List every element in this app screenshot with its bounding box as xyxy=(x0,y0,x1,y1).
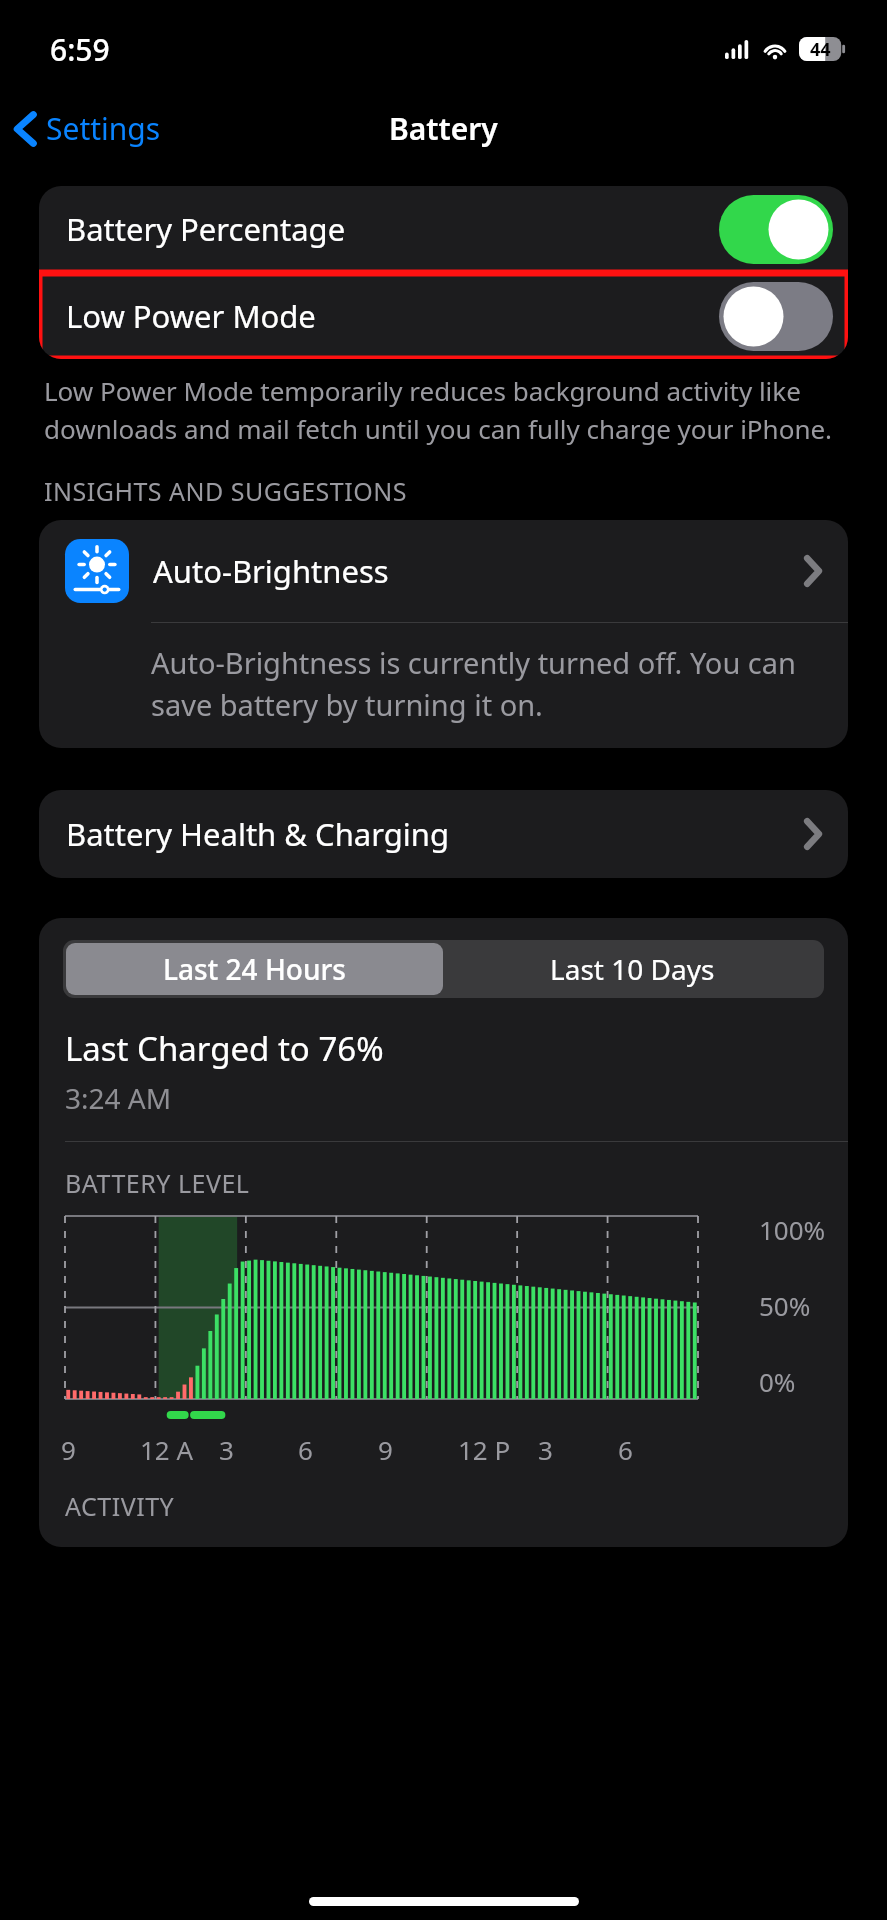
staticText: Settings xyxy=(46,108,161,149)
staticText: 12 P xyxy=(458,1432,511,1467)
staticText: Battery xyxy=(389,108,498,149)
staticText: 6:59 xyxy=(50,29,110,70)
staticText: Last 24 Hours xyxy=(163,950,346,988)
button[interactable]: Settings xyxy=(0,100,177,157)
staticText: 0% xyxy=(759,1364,796,1399)
staticText: 6 xyxy=(618,1432,633,1467)
staticText: BATTERY LEVEL xyxy=(65,1166,250,1200)
button[interactable]: Last 10 Days xyxy=(443,943,821,995)
button[interactable]: Battery Health & Charging xyxy=(39,790,848,878)
staticText: 6 xyxy=(298,1432,313,1467)
staticText: Last Charged to 76% xyxy=(65,1026,384,1071)
staticText: Auto-Brightness is currently turned off.… xyxy=(151,643,828,724)
staticText: 44 xyxy=(810,37,831,61)
staticText: Low Power Mode xyxy=(66,295,717,337)
button[interactable]: Low Power Mode xyxy=(39,273,848,359)
button[interactable]: Battery Percentage xyxy=(39,186,848,272)
staticText: 9 xyxy=(378,1432,393,1467)
staticText: 3 xyxy=(219,1432,234,1467)
staticText: 100% xyxy=(759,1212,826,1247)
staticText: 50% xyxy=(759,1288,811,1323)
staticText: 3:24 AM xyxy=(65,1079,172,1117)
staticText: Last 10 Days xyxy=(550,950,715,988)
button[interactable]: Last 24 Hours xyxy=(66,943,443,995)
staticText: 3 xyxy=(538,1432,553,1467)
staticText: Battery Health & Charging xyxy=(66,813,803,855)
staticText: Battery Percentage xyxy=(66,208,717,250)
staticText: 12 A xyxy=(140,1432,194,1467)
staticText: ACTIVITY xyxy=(65,1489,175,1523)
staticText: Low Power Mode temporarily reduces backg… xyxy=(44,373,843,446)
button[interactable]: Auto-Brightness xyxy=(39,520,848,622)
staticText: 9 xyxy=(61,1432,76,1467)
staticText: Auto-Brightness xyxy=(153,550,803,592)
button[interactable]: Switch on xyxy=(717,191,835,267)
staticText: INSIGHTS AND SUGGESTIONS xyxy=(44,474,407,508)
button[interactable]: Switch off xyxy=(717,278,835,354)
